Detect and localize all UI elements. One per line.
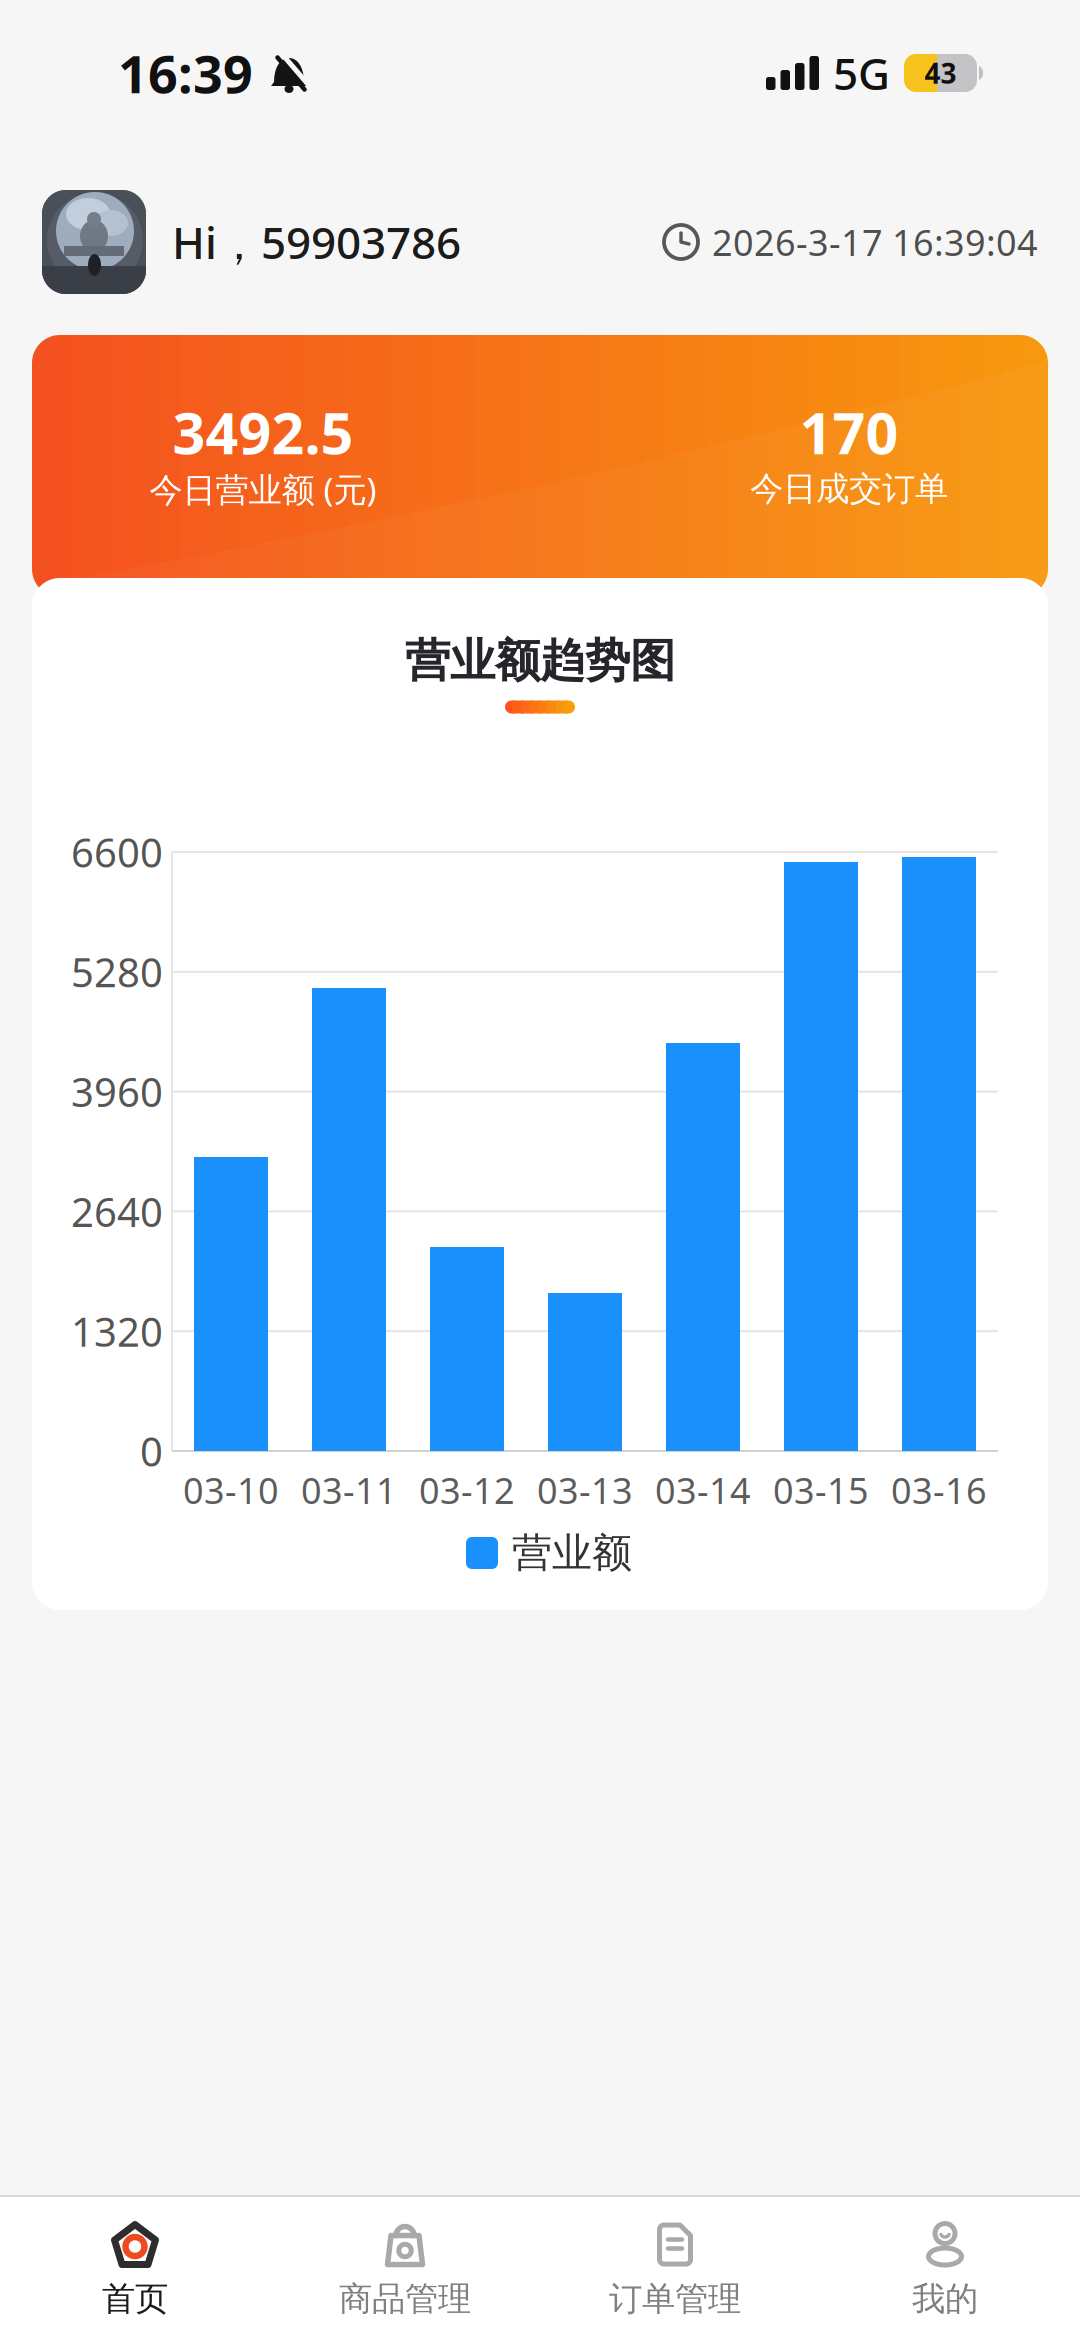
staticText: 43 [924,54,956,92]
staticText: 03-12 [419,1466,515,1514]
staticText: 商品管理 [339,2278,471,2319]
staticText: 03-11 [301,1466,397,1514]
staticText: 03-15 [773,1466,869,1514]
staticText: 16:39 [118,38,253,108]
button[interactable]: 我的 [810,2197,1080,2341]
staticText: 今日成交订单 [750,468,948,509]
staticText: 5280 [71,945,163,998]
staticText: 1320 [71,1305,163,1358]
staticText: 03-16 [891,1466,987,1514]
staticText: 03-10 [183,1466,279,1514]
staticText: 订单管理 [609,2278,741,2319]
button[interactable]: 首页 [0,2197,270,2341]
staticText: 3960 [71,1065,163,1118]
button[interactable]: 订单管理 [540,2197,810,2341]
staticText: 3492.5 [172,394,353,470]
staticText: Hi，59903786 [172,213,461,271]
staticText: 营业额 [512,1528,632,1577]
staticText: 首页 [102,2278,168,2319]
staticText: 170 [799,394,898,470]
staticText: 03-14 [655,1466,751,1514]
staticText: 今日营业额 (元) [149,467,376,511]
staticText: 6600 [71,825,163,878]
button[interactable]: 商品管理 [270,2197,540,2341]
staticText: 我的 [912,2278,978,2319]
staticText: 0 [140,1424,163,1477]
staticText: 2026-3-17 16:39:04 [712,218,1038,266]
staticText: 03-13 [537,1466,633,1514]
staticText: 2640 [71,1185,163,1238]
staticText: 5G [833,44,890,102]
staticText: 营业额趋势图 [405,633,675,689]
